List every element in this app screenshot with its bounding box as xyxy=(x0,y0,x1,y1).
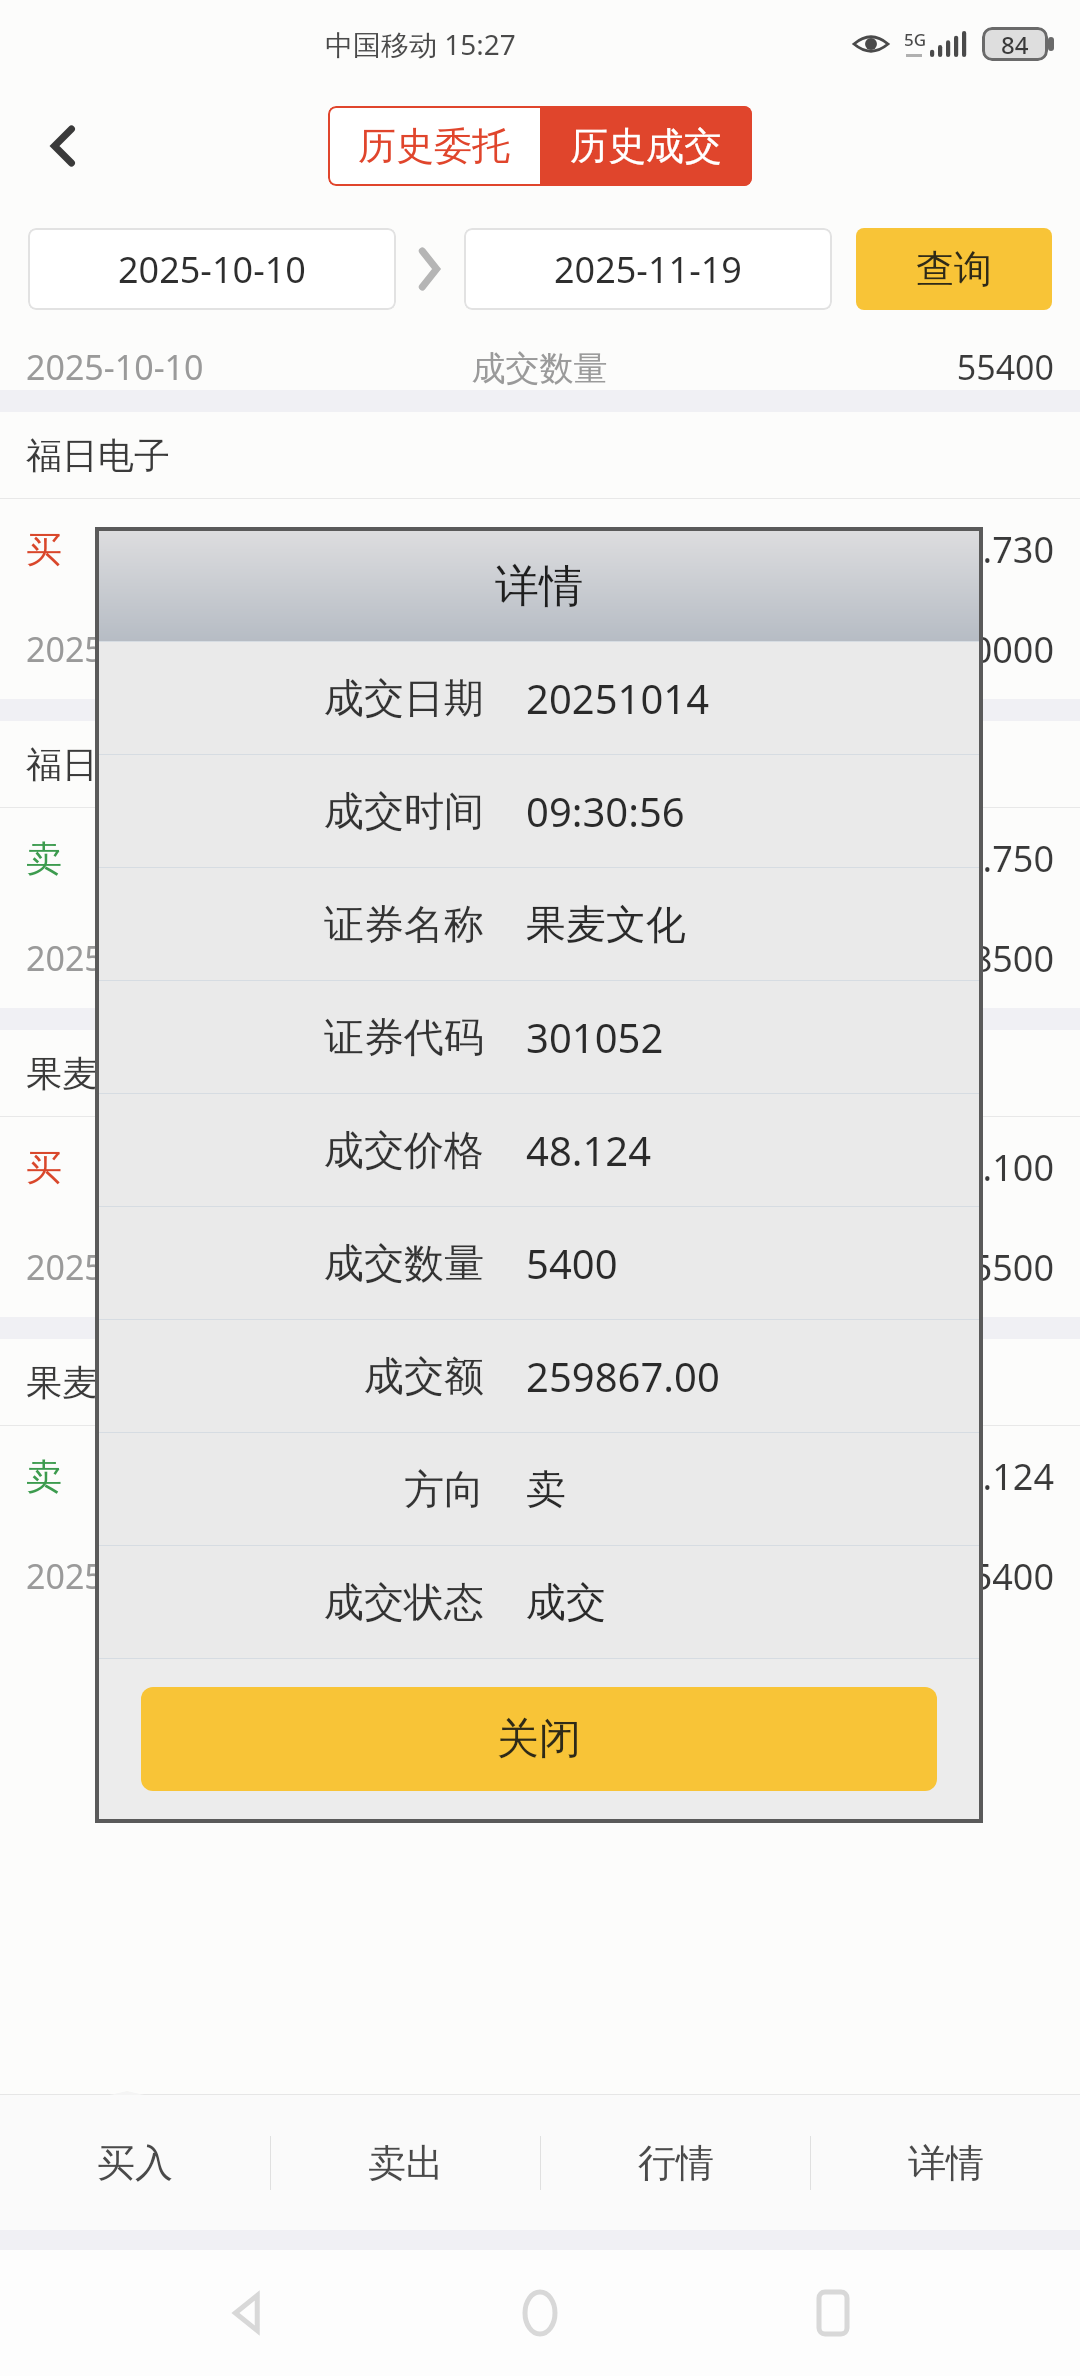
staticText: 成交额 xyxy=(99,1351,484,1401)
staticText: 2025-10-10 xyxy=(26,344,368,390)
button[interactable]: 果麦文化 xyxy=(0,1008,1080,1317)
staticText: 48.124 xyxy=(526,1123,652,1177)
button[interactable]: Recents xyxy=(788,2268,878,2358)
staticText: 证券代码 xyxy=(99,1012,484,1062)
staticText: 卖 xyxy=(26,836,347,881)
staticText: 中国移动 15:27 xyxy=(325,25,516,63)
staticText: 果麦文化 xyxy=(26,1051,170,1096)
button[interactable]: Back xyxy=(203,2268,293,2358)
staticText: 历史成交 xyxy=(570,122,722,170)
staticText: 卖出 xyxy=(368,2139,444,2187)
button[interactable]: 福日电子 xyxy=(0,699,1080,1008)
staticText: 48.124 xyxy=(733,1452,1054,1501)
staticText: 成交状态 xyxy=(99,1577,484,1627)
staticText: 成交数量 xyxy=(347,1246,733,1289)
staticText: 成交价格 xyxy=(347,837,733,880)
staticText: 证券名称 xyxy=(99,899,484,949)
staticText: 8500 xyxy=(733,934,1054,983)
button[interactable]: 详情 xyxy=(811,2095,1080,2230)
staticText: 55400 xyxy=(711,344,1054,390)
staticText: 成交 xyxy=(526,1577,606,1627)
button[interactable]: 买入 xyxy=(0,2095,270,2230)
staticText: 5400 xyxy=(526,1236,618,1290)
staticText: 2025-10-10 xyxy=(118,245,306,294)
button[interactable]: 福日电子 xyxy=(0,390,1080,699)
staticText: 09:30:56 xyxy=(526,784,685,838)
staticText: 详情 xyxy=(495,559,583,614)
button[interactable]: 关闭 xyxy=(141,1687,937,1791)
staticText: 5400 xyxy=(733,1552,1054,1601)
staticText: 8.750 xyxy=(733,834,1054,883)
button[interactable]: 查询 xyxy=(856,228,1052,310)
staticText: 成交价格 xyxy=(99,1125,484,1175)
staticText: 成交日期 xyxy=(99,673,484,723)
staticText: 成交数量 xyxy=(347,937,733,980)
staticText: 买入 xyxy=(97,2139,173,2187)
button[interactable]: Home xyxy=(495,2268,585,2358)
button[interactable]: 历史成交 xyxy=(540,106,752,186)
staticText: 行情 xyxy=(638,2139,714,2187)
staticText: 关闭 xyxy=(497,1713,581,1766)
staticText: 果麦文化 xyxy=(26,1360,170,1405)
staticText: 2025-10-14 xyxy=(26,935,347,981)
button[interactable]: Back xyxy=(28,110,100,182)
staticText: 259867.00 xyxy=(526,1349,720,1403)
staticText: 10000 xyxy=(733,625,1054,674)
button[interactable]: 行情 xyxy=(541,2095,810,2230)
staticText: 2025-11-19 xyxy=(554,245,742,294)
staticText: 301052 xyxy=(526,1010,664,1064)
staticText: 卖 xyxy=(526,1464,566,1514)
staticText: 84 xyxy=(1001,28,1029,61)
staticText: 成交价格 xyxy=(347,1146,733,1189)
staticText: 成交数量 xyxy=(347,1555,733,1598)
staticText: 8.730 xyxy=(733,525,1054,574)
staticText: 详情 xyxy=(908,2139,984,2187)
staticText: 卖 xyxy=(26,1454,347,1499)
staticText: 2025-10-14 xyxy=(26,1553,347,1599)
staticText: 成交价格 xyxy=(347,528,733,571)
staticText: 福日电子 xyxy=(26,742,170,787)
button[interactable]: 果麦文化 xyxy=(0,1317,1080,1626)
staticText: 查询 xyxy=(916,245,992,293)
staticText: 成交数量 xyxy=(99,1238,484,1288)
staticText: 5500 xyxy=(733,1243,1054,1292)
staticText: 48.100 xyxy=(733,1143,1054,1192)
button[interactable]: 2025-10-10 xyxy=(28,228,396,310)
button[interactable]: 卖出 xyxy=(271,2095,540,2230)
staticText: 20251014 xyxy=(526,671,710,725)
button[interactable]: 历史委托 xyxy=(328,106,540,186)
staticText: 5G xyxy=(904,28,927,51)
staticText: 2025-10-14 xyxy=(26,626,347,672)
staticText: 成交时间 xyxy=(99,786,484,836)
staticText: 方向 xyxy=(99,1464,484,1514)
staticText: 福日电子 xyxy=(26,433,170,478)
staticText: 历史委托 xyxy=(358,122,510,170)
staticText: 成交价格 xyxy=(347,1455,733,1498)
button[interactable]: 2025-11-19 xyxy=(464,228,832,310)
staticText: 2025-10-14 xyxy=(26,1244,347,1290)
staticText: 成交数量 xyxy=(347,628,733,671)
staticText: 成交数量 xyxy=(368,347,711,390)
staticText: 果麦文化 xyxy=(526,899,686,949)
staticText: 买 xyxy=(26,1145,347,1190)
staticText: 买 xyxy=(26,527,347,572)
